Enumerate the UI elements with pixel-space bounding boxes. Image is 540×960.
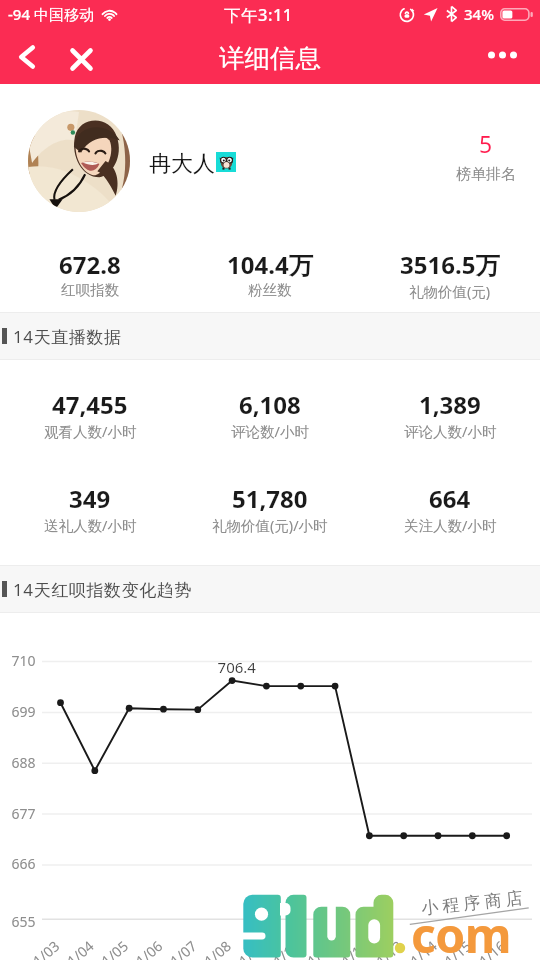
staticText: 粉丝数 bbox=[248, 281, 292, 299]
staticText: 评论人数/小时 bbox=[404, 421, 497, 441]
staticText: 关注人数/小时 bbox=[404, 515, 497, 535]
button[interactable]: 返回 bbox=[0, 34, 54, 84]
staticText: 664 bbox=[429, 482, 471, 515]
button[interactable]: 关闭 bbox=[54, 34, 108, 84]
staticText: 观看人数/小时 bbox=[44, 421, 137, 441]
staticText: 672.8 bbox=[59, 248, 121, 281]
staticText: 详细信息 bbox=[219, 42, 321, 74]
staticText: 14天直播数据 bbox=[13, 325, 122, 348]
staticText: 3516.5万 bbox=[400, 248, 500, 281]
staticText: 冉大人 bbox=[149, 150, 215, 178]
staticText: 349 bbox=[69, 482, 111, 515]
staticText: 红呗指数 bbox=[61, 281, 119, 299]
staticText: 47,455 bbox=[52, 388, 128, 421]
staticText: 34% bbox=[464, 4, 494, 24]
staticText: 下午3:11 bbox=[224, 3, 293, 26]
staticText: 6,108 bbox=[239, 388, 301, 421]
staticText: 评论数/小时 bbox=[231, 421, 309, 441]
staticText: 礼物价值(元) bbox=[409, 281, 491, 301]
staticText: 51,780 bbox=[232, 482, 308, 515]
staticText: 送礼人数/小时 bbox=[44, 515, 137, 535]
staticText: 14天红呗指数变化趋势 bbox=[13, 578, 193, 601]
staticText: 榜单排名 bbox=[456, 165, 516, 184]
button[interactable]: 更多 bbox=[478, 34, 528, 84]
staticText: 1,389 bbox=[419, 388, 481, 421]
staticText: 104.4万 bbox=[227, 248, 313, 281]
staticText: -94 中国移动 bbox=[8, 4, 94, 24]
staticText: 5 bbox=[479, 128, 493, 159]
staticText: 礼物价值(元)/小时 bbox=[212, 515, 328, 535]
